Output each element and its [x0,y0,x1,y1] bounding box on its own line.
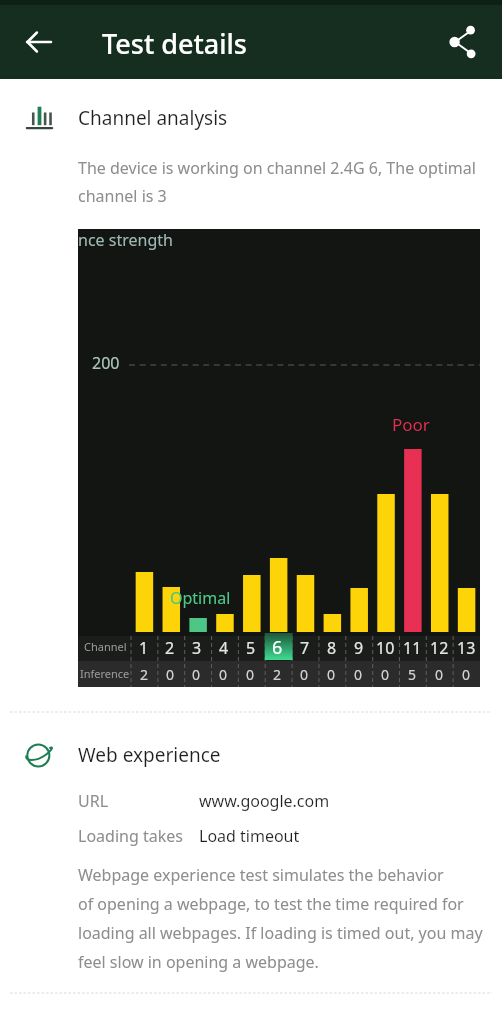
staticText: 5 [408,665,417,684]
staticText: Load timeout [199,825,300,847]
staticText: The device is working on channel 2.4G 6,… [78,157,478,207]
staticText: www.google.com [199,790,330,812]
staticText: 5 [246,637,256,659]
staticText: 0 [166,665,175,684]
button[interactable]: Web experience [25,737,502,773]
staticText: 3 [192,637,202,659]
staticText: 2 [165,637,175,659]
staticText: Webpage experience test simulates the be… [78,864,488,972]
staticText: 0 [435,665,444,684]
staticText: 10 [376,637,395,659]
staticText: Optimal [170,587,231,609]
staticText: 0 [219,665,228,684]
staticText: 2 [273,665,282,684]
staticText: 1 [139,637,149,659]
button[interactable]: Channel analysis [26,100,502,136]
staticText: 9 [354,637,364,659]
staticText: 12 [430,637,449,659]
staticText: 4 [219,637,229,659]
staticText: nce strength [78,229,173,251]
staticText: 200 [92,352,120,374]
button[interactable]: Share [428,7,498,77]
staticText: 13 [457,637,476,659]
staticText: Channel analysis [78,105,228,131]
staticText: Channel [84,639,127,654]
staticText: Test details [102,25,247,62]
staticText: 6 [272,635,283,660]
staticText: 0 [381,665,390,684]
staticText: 2 [140,665,149,684]
staticText: 0 [354,665,363,684]
staticText: 8 [327,637,337,659]
staticText: 11 [403,637,422,659]
staticText: Web experience [78,742,221,768]
staticText: Poor [392,413,430,436]
staticText: 0 [246,665,255,684]
staticText: 0 [300,665,309,684]
staticText: URL [78,790,199,812]
button[interactable]: Back [1,7,76,77]
staticText: Inference [80,666,130,681]
staticText: 0 [327,665,336,684]
staticText: 0 [462,665,471,684]
staticText: 0 [192,665,201,684]
staticText: Loading takes [78,825,199,847]
staticText: 7 [300,637,310,659]
